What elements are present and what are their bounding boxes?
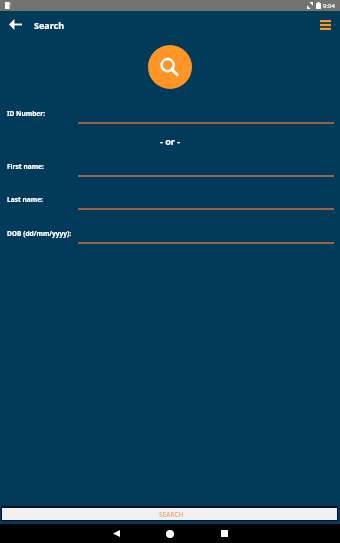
staticText: First name: <box>7 162 44 171</box>
staticText: SEARCH <box>159 510 184 519</box>
button[interactable]: SEARCH <box>1 506 338 521</box>
staticText: 9:04 <box>323 2 335 10</box>
staticText: ID Number: <box>7 109 46 118</box>
button[interactable]: Home <box>158 524 182 543</box>
staticText: Search <box>34 19 65 31</box>
button[interactable]: Recents <box>212 524 236 543</box>
staticText: Last name: <box>7 195 43 204</box>
staticText: - or - <box>160 135 181 147</box>
button[interactable]: Search <box>148 45 192 89</box>
staticText: DOB (dd/mm/yyyy): <box>7 229 72 238</box>
button[interactable]: Back <box>104 524 128 543</box>
button[interactable]: Back <box>1 11 29 38</box>
button[interactable]: Menu <box>311 11 339 38</box>
